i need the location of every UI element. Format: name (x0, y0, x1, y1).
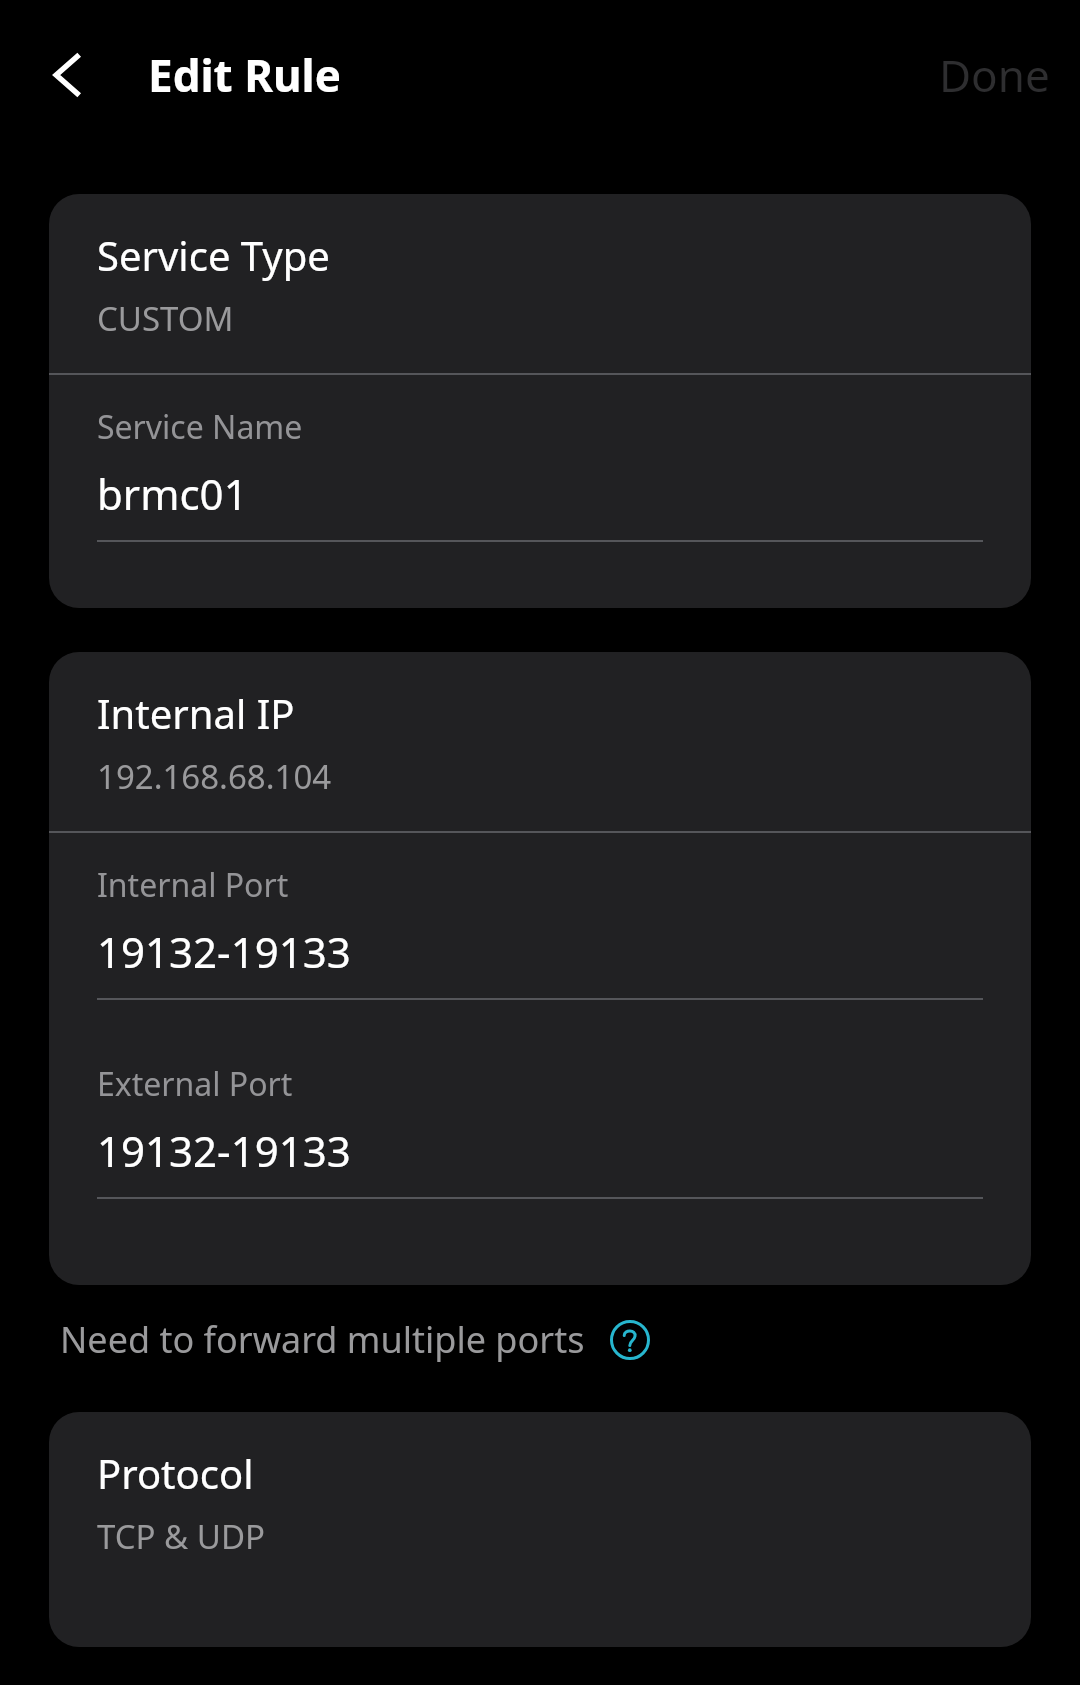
button[interactable]: Protocol (49, 1412, 1031, 1647)
button[interactable]: External Port (49, 1000, 1031, 1285)
staticText: Internal Port (97, 863, 289, 907)
staticText: Protocol (97, 1446, 254, 1500)
staticText: Need to forward multiple ports (60, 1315, 585, 1364)
other: Help (607, 1317, 653, 1363)
staticText: Edit Rule (148, 45, 341, 105)
button[interactable]: Service Name (49, 375, 1031, 608)
button[interactable]: Need to forward multiple ports (60, 1315, 653, 1364)
staticText: 19132-19133 (97, 923, 351, 980)
button[interactable]: Back (28, 33, 112, 117)
staticText: 192.168.68.104 (97, 754, 332, 799)
button[interactable]: Internal IP (49, 652, 1031, 831)
staticText: Service Name (97, 405, 303, 449)
staticText: External Port (97, 1062, 293, 1106)
staticText: Done (939, 45, 1050, 105)
staticText: CUSTOM (97, 296, 234, 341)
button[interactable]: Service Type (49, 194, 1031, 373)
staticText: Service Type (97, 228, 330, 282)
button[interactable]: Internal Port (49, 833, 1031, 1000)
staticText: brmc01 (97, 465, 248, 522)
staticText: TCP & UDP (97, 1514, 266, 1559)
staticText: 19132-19133 (97, 1122, 351, 1179)
staticText: Internal IP (97, 686, 295, 740)
button[interactable]: Done (909, 25, 1080, 125)
